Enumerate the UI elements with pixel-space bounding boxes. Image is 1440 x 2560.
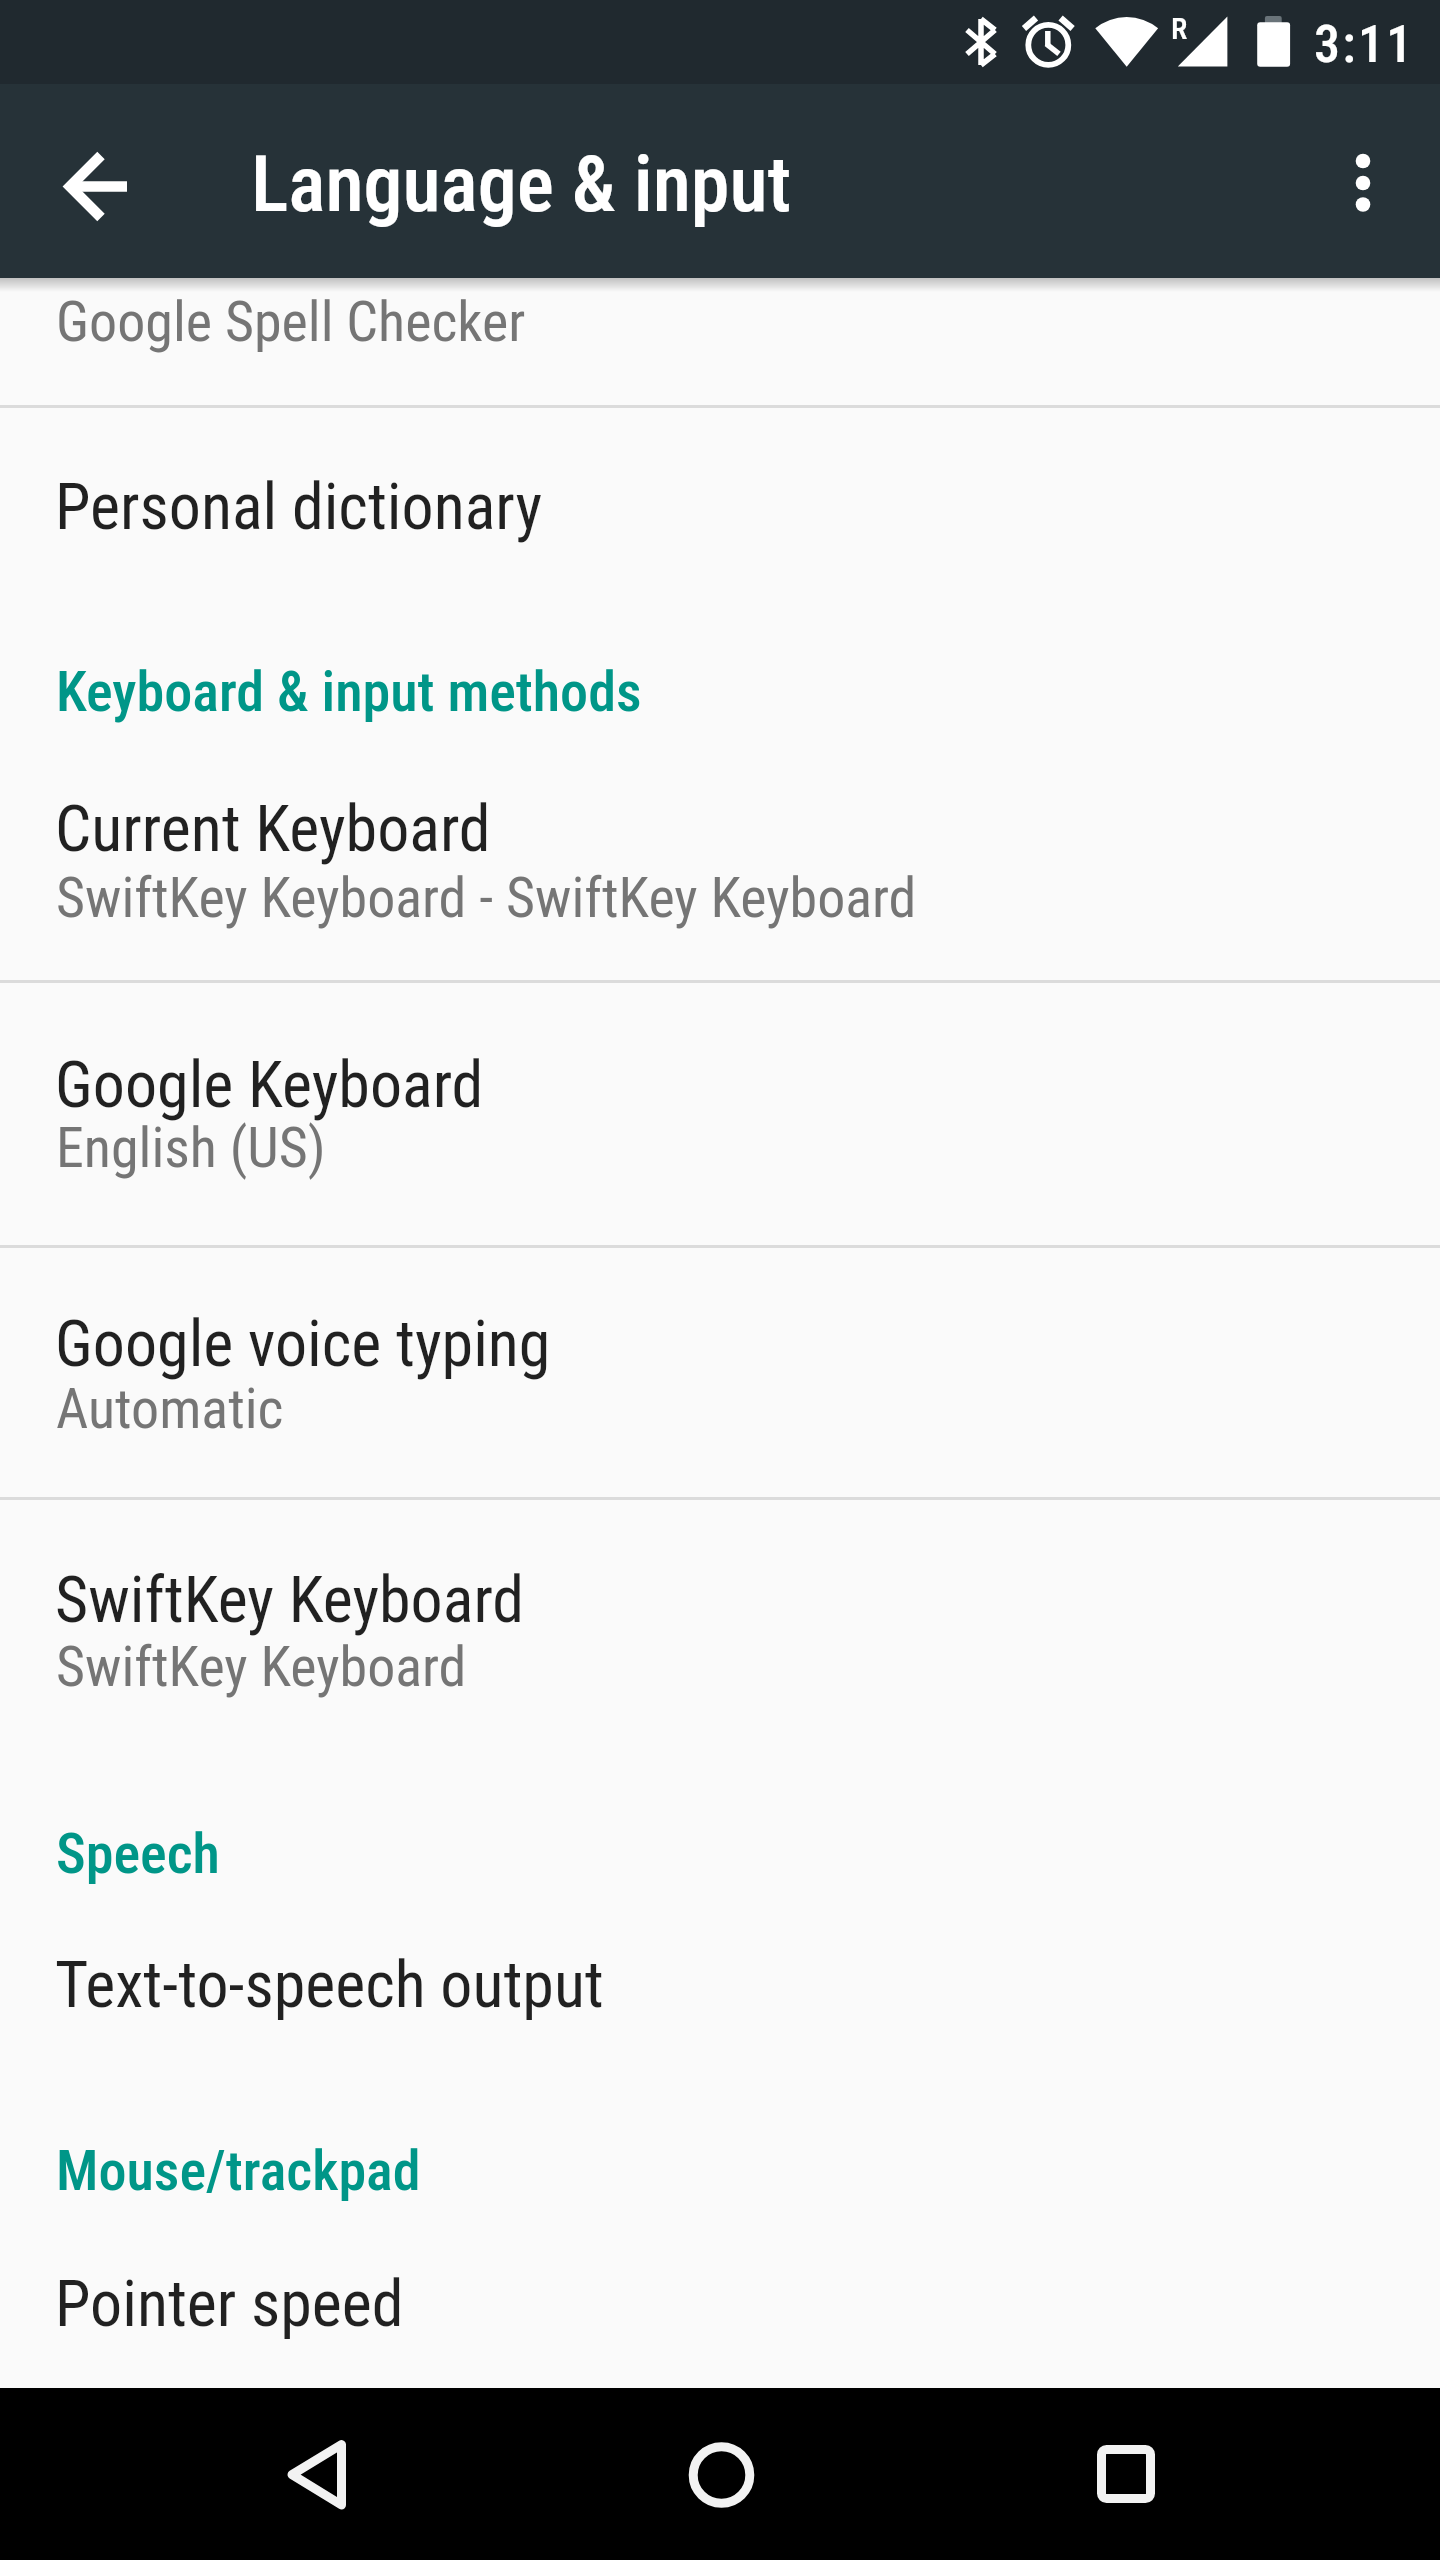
staticText: Google Keyboard xyxy=(55,1048,484,1123)
staticText: Language & input xyxy=(251,139,792,230)
button[interactable] xyxy=(1315,135,1411,231)
button[interactable]: Current Keyboard xyxy=(0,740,1440,980)
button[interactable] xyxy=(640,2390,800,2550)
staticText: Keyboard & input methods xyxy=(56,659,642,725)
staticText: 3:11 xyxy=(1314,14,1415,75)
button[interactable] xyxy=(51,138,147,234)
staticText: Speech xyxy=(56,1821,220,1887)
button[interactable] xyxy=(1045,2390,1205,2550)
staticText: Current Keyboard xyxy=(55,792,491,867)
staticText: Personal dictionary xyxy=(55,470,543,545)
staticText: SwiftKey Keyboard xyxy=(56,1634,467,1700)
staticText: SwiftKey Keyboard xyxy=(55,1563,525,1638)
staticText: Text-to-speech output xyxy=(55,1948,604,2023)
button[interactable] xyxy=(240,2390,400,2550)
button[interactable]: Personal dictionary xyxy=(0,408,1440,613)
staticText: R xyxy=(1171,11,1188,46)
staticText: Google voice typing xyxy=(55,1307,551,1382)
staticText: Google Spell Checker xyxy=(56,289,526,355)
button[interactable]: Google Spell Checker xyxy=(0,278,1440,405)
staticText: Mouse/trackpad xyxy=(56,2138,421,2204)
staticText: Automatic xyxy=(56,1376,284,1442)
button[interactable]: Google Keyboard xyxy=(0,983,1440,1245)
button[interactable]: Text-to-speech output xyxy=(0,1880,1440,2070)
staticText: English (US) xyxy=(56,1115,326,1181)
button[interactable]: Google voice typing xyxy=(0,1248,1440,1497)
button[interactable]: Pointer speed xyxy=(0,2200,1440,2388)
staticText: Pointer speed xyxy=(55,2267,404,2342)
button[interactable]: SwiftKey Keyboard xyxy=(0,1500,1440,1760)
staticText: SwiftKey Keyboard - SwiftKey Keyboard xyxy=(56,865,917,931)
